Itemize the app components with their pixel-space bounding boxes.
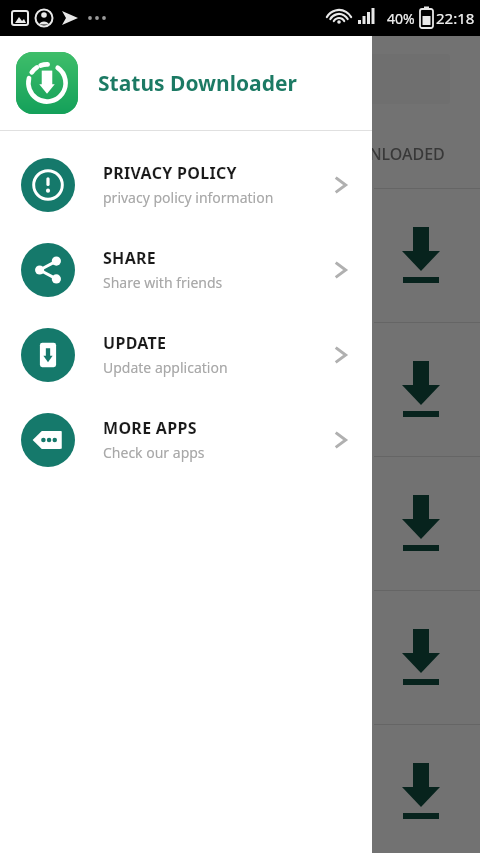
button[interactable]: Update application <box>0 312 372 397</box>
other: Update application <box>21 328 75 382</box>
staticText: DOWNLOADED <box>330 143 445 165</box>
staticText: MORE APPS <box>103 417 197 439</box>
staticText: Share with friends <box>103 273 223 292</box>
staticText: Check our apps <box>103 443 205 462</box>
button[interactable]: Share <box>0 227 372 312</box>
staticText: SHARE <box>103 247 157 269</box>
staticText: Update application <box>103 358 228 377</box>
staticText: Status Downloader <box>98 69 297 98</box>
staticText: 40% <box>387 9 415 28</box>
button[interactable]: Privacy policy <box>0 142 372 227</box>
other: Share <box>21 243 75 297</box>
other: Privacy policy <box>21 158 75 212</box>
staticText: UPDATE <box>103 332 167 354</box>
staticText: 22:18 <box>436 8 475 28</box>
button[interactable]: More apps <box>0 397 372 482</box>
staticText: privacy policy information <box>103 188 274 207</box>
other: More apps <box>21 413 75 467</box>
staticText: PRIVACY POLICY <box>103 162 237 184</box>
